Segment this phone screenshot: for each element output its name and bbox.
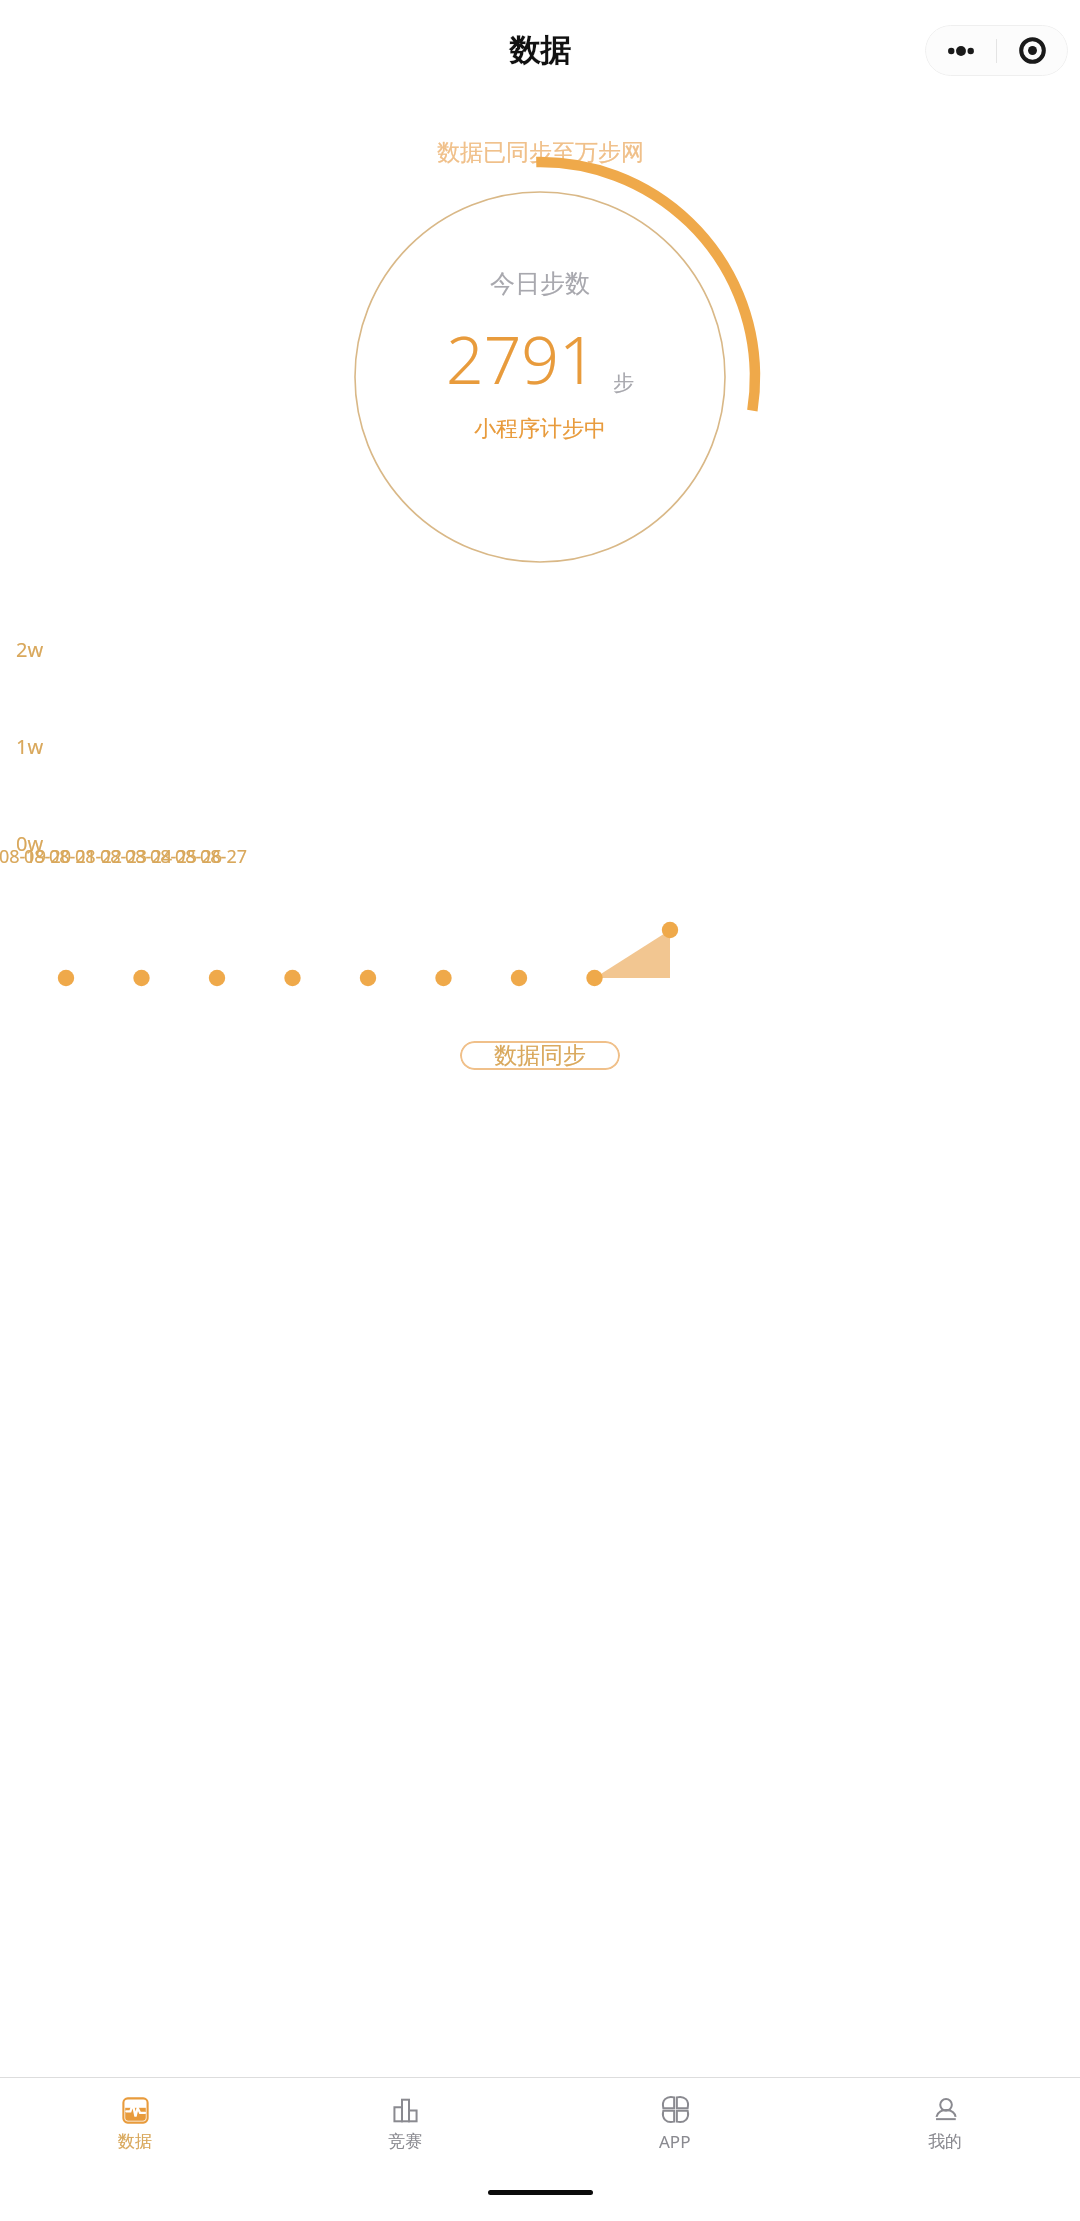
staticText: 我的 xyxy=(928,2131,962,2152)
staticText: 08-22 xyxy=(75,844,122,869)
staticText: 2791 xyxy=(446,313,597,403)
staticText: 0w xyxy=(16,830,44,857)
button[interactable]: Close mini program xyxy=(997,25,1068,76)
staticText: 08-24 xyxy=(125,844,172,869)
staticText: 08-27 xyxy=(200,844,247,869)
button[interactable]: 数据同步 xyxy=(460,1041,620,1070)
button[interactable]: More options xyxy=(925,25,996,76)
button[interactable]: APP xyxy=(540,2078,810,2171)
staticText: 数据 xyxy=(118,2131,152,2152)
staticText: 数据同步 xyxy=(494,1041,586,1070)
staticText: 竞赛 xyxy=(388,2131,422,2152)
staticText: 小程序计步中 xyxy=(474,415,606,443)
staticText: 08-23 xyxy=(100,844,147,869)
button[interactable]: 竞赛 xyxy=(270,2078,540,2171)
staticText: 2w xyxy=(16,636,44,663)
button[interactable]: 数据 xyxy=(0,2078,270,2171)
staticText: 08-25 xyxy=(150,844,197,869)
staticText: 1w xyxy=(16,733,44,760)
staticText: 数据 xyxy=(509,31,571,70)
staticText: APP xyxy=(659,2130,691,2153)
staticText: 08-19 xyxy=(0,844,46,869)
staticText: 数据已同步至万步网 xyxy=(437,138,644,167)
staticText: 步 xyxy=(613,370,634,396)
staticText: 08-21 xyxy=(49,844,96,869)
staticText: 08-20 xyxy=(24,844,71,869)
staticText: 08-26 xyxy=(175,844,222,869)
button[interactable]: 我的 xyxy=(810,2078,1080,2171)
staticText: 今日步数 xyxy=(490,268,590,299)
